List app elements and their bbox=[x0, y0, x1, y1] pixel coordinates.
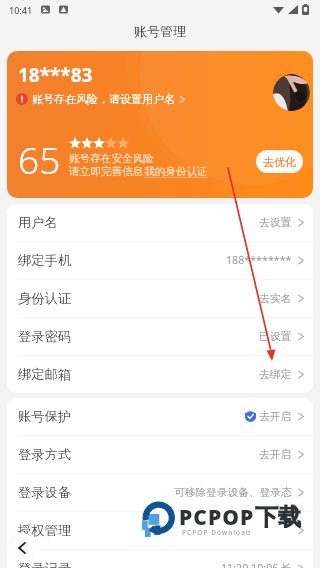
button[interactable]: Profile photo bbox=[273, 74, 310, 111]
button[interactable]: 我的身份认证 bbox=[144, 165, 208, 178]
button[interactable]: 登录记录 bbox=[7, 550, 313, 568]
staticText: 18***83 bbox=[18, 62, 93, 88]
staticText: 登录方式 bbox=[18, 446, 72, 463]
button[interactable]: 登录设备 bbox=[7, 474, 313, 511]
button[interactable]: 登录方式 bbox=[7, 436, 313, 473]
staticText: 去实名 bbox=[259, 292, 292, 305]
button[interactable]: 去优化 bbox=[256, 150, 303, 173]
staticText: 账号存在安全风险 bbox=[69, 152, 154, 165]
staticText: 去开启 bbox=[259, 410, 292, 423]
staticText: 11:20 10:06 长 bbox=[221, 561, 292, 568]
button[interactable]: 授权管理 bbox=[7, 512, 313, 549]
staticText: 下载 bbox=[255, 503, 301, 532]
staticText: 用户名 bbox=[18, 214, 58, 231]
staticText: 去设置 bbox=[259, 216, 292, 229]
button[interactable]: 绑定手机 bbox=[7, 242, 313, 279]
staticText: 去优化 bbox=[263, 155, 296, 169]
staticText: 账号管理 bbox=[134, 23, 186, 39]
button[interactable]: 登录密码 bbox=[7, 318, 313, 355]
staticText: 账号存在风险，请设置用户名 bbox=[32, 92, 175, 106]
staticText: 账号保护 bbox=[18, 408, 72, 425]
button[interactable]: 账号保护 bbox=[7, 398, 313, 435]
staticText: 65 bbox=[18, 134, 61, 184]
staticText: 绑定邮箱 bbox=[18, 366, 72, 383]
staticText: 10:41 bbox=[9, 4, 33, 16]
button[interactable]: 身份认证 bbox=[7, 280, 313, 317]
staticText: 身份认证 bbox=[18, 290, 72, 307]
staticText: 188******** bbox=[226, 253, 292, 268]
staticText: 可移除登录设备、登录态 bbox=[174, 486, 292, 499]
staticText: 请立即完善信息 bbox=[69, 165, 144, 178]
staticText: 授权管理 bbox=[18, 522, 72, 539]
staticText: 已设置 bbox=[259, 330, 292, 343]
button[interactable]: Back bbox=[7, 533, 36, 562]
staticText: 登录记录 bbox=[18, 560, 72, 568]
staticText: PCPOP bbox=[179, 503, 255, 532]
staticText: PCPOP Download bbox=[182, 528, 251, 537]
staticText: 登录密码 bbox=[18, 328, 72, 345]
button[interactable]: 账号存在风险，请设置用户名 bbox=[16, 92, 186, 106]
staticText: 去绑定 bbox=[259, 368, 292, 381]
button[interactable]: 绑定邮箱 bbox=[7, 356, 313, 393]
button[interactable]: 用户名 bbox=[7, 204, 313, 241]
staticText: 登录设备 bbox=[18, 484, 72, 501]
staticText: 绑定手机 bbox=[18, 252, 72, 269]
staticText: 去开启 bbox=[259, 448, 292, 461]
